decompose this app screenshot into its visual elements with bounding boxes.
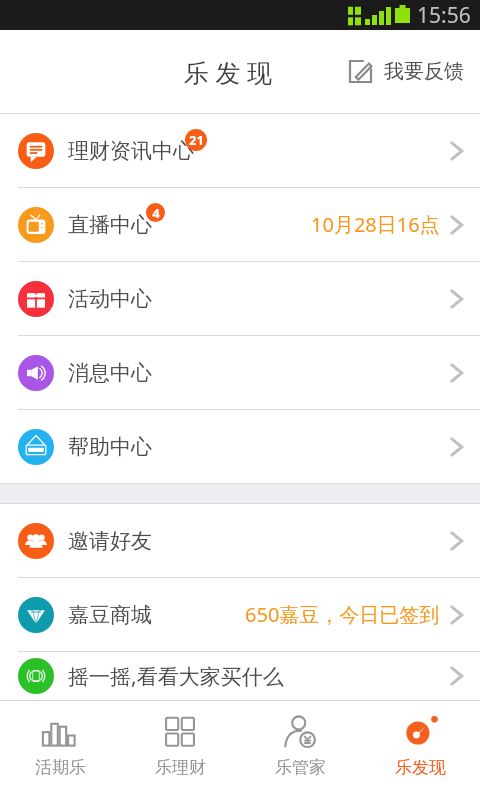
button[interactable]: 乐理财 [120, 701, 240, 800]
button[interactable]: 活动中心 [0, 262, 480, 335]
button[interactable]: 嘉豆商城 [0, 578, 480, 651]
staticText: 乐管家 [275, 757, 326, 778]
button[interactable]: 乐管家 [240, 701, 360, 800]
staticText: 4 [152, 204, 160, 222]
staticText: 10月28日16点 [311, 211, 440, 238]
button[interactable]: 直播中心 [0, 188, 480, 261]
staticText: 650嘉豆，今日已签到 [245, 601, 440, 628]
staticText: 嘉豆商城 [68, 602, 152, 628]
button[interactable]: 我要反馈 [346, 57, 464, 86]
staticText: 摇一摇,看看大家买什么 [68, 662, 284, 691]
button[interactable]: 理财资讯中心 [0, 114, 480, 187]
staticText: 15:56 [417, 1, 471, 30]
staticText: 理财资讯中心 [68, 138, 194, 164]
staticText: 邀请好友 [68, 528, 152, 554]
staticText: 乐 发 现 [184, 55, 273, 89]
staticText: 直播中心 [68, 212, 152, 238]
button[interactable]: 邀请好友 [0, 504, 480, 577]
staticText: 活期乐 [35, 757, 86, 778]
button[interactable]: 消息中心 [0, 336, 480, 409]
other: 我要反馈 [346, 57, 375, 86]
staticText: 帮助中心 [68, 434, 152, 460]
staticText: 消息中心 [68, 360, 152, 386]
button[interactable]: 活期乐 [0, 701, 120, 800]
staticText: 活动中心 [68, 286, 152, 312]
staticText: 乐理财 [155, 757, 206, 778]
button[interactable]: 帮助中心 [0, 410, 480, 483]
button[interactable]: 摇一摇,看看大家买什么 [0, 652, 480, 700]
button[interactable]: 乐发现 [360, 701, 480, 800]
staticText: 我要反馈 [384, 59, 464, 84]
staticText: 21 [189, 131, 204, 149]
staticText: 乐发现 [395, 757, 446, 778]
